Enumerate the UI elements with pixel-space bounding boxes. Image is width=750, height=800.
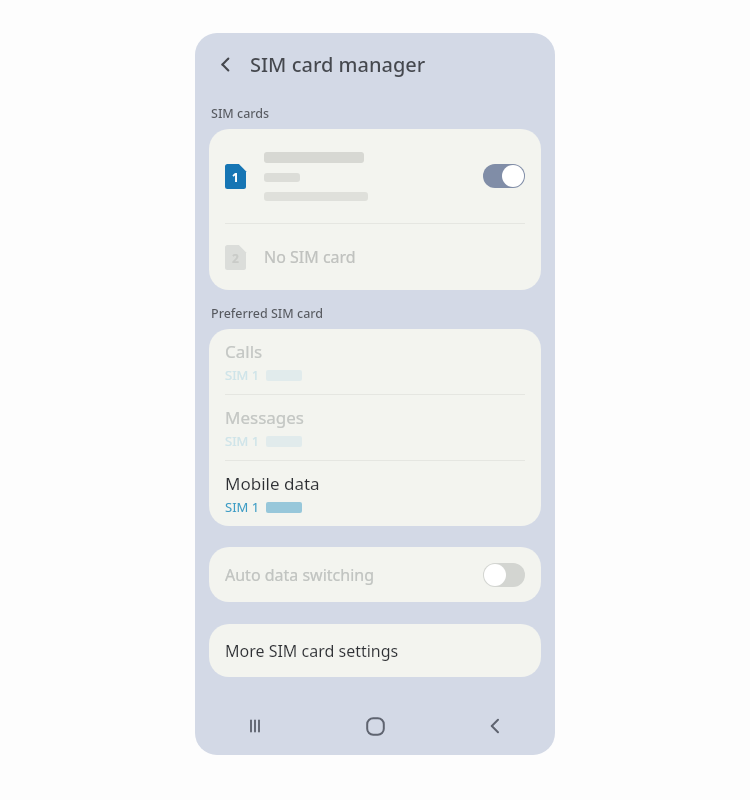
button[interactable]: 2 bbox=[209, 224, 541, 290]
button[interactable]: Navigate up bbox=[207, 46, 243, 82]
staticText: SIM card manager bbox=[250, 51, 426, 78]
button[interactable]: Messages bbox=[209, 395, 541, 460]
staticText: SIM 1 bbox=[225, 498, 260, 516]
staticText: More SIM card settings bbox=[225, 640, 399, 662]
button[interactable]: Turn off bbox=[483, 164, 525, 188]
staticText: Preferred SIM card bbox=[211, 305, 324, 322]
staticText: SIM 1 bbox=[225, 432, 260, 450]
staticText: 1 bbox=[232, 169, 239, 185]
staticText: Calls bbox=[225, 340, 263, 363]
staticText: Mobile data bbox=[225, 472, 320, 495]
button[interactable]: Turn on bbox=[483, 563, 525, 587]
staticText: No SIM card bbox=[264, 246, 356, 268]
button[interactable]: Calls bbox=[209, 329, 541, 394]
button[interactable]: 1 bbox=[209, 129, 541, 223]
staticText: Auto data switching bbox=[225, 564, 483, 586]
button[interactable]: Recent apps bbox=[195, 697, 315, 755]
staticText: SIM cards bbox=[211, 105, 270, 122]
staticText: Messages bbox=[225, 406, 305, 429]
button[interactable]: Back bbox=[435, 697, 555, 755]
button[interactable]: Auto data switching bbox=[209, 547, 541, 602]
staticText: 2 bbox=[232, 250, 239, 266]
button[interactable]: Home bbox=[315, 697, 435, 755]
button[interactable]: More SIM card settings bbox=[209, 624, 541, 677]
staticText: SIM 1 bbox=[225, 366, 260, 384]
button[interactable]: Mobile data bbox=[209, 461, 541, 526]
